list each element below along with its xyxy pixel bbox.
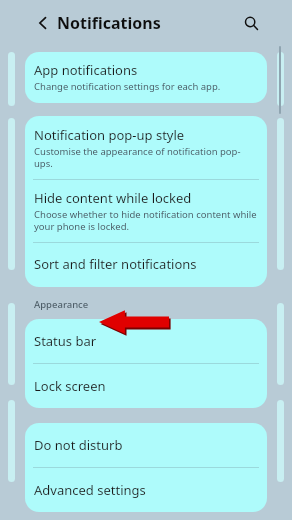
- button[interactable]: Lock screen: [25, 364, 267, 408]
- staticText: Lock screen: [34, 377, 106, 395]
- button[interactable]: Notification pop-up style: [25, 116, 267, 179]
- staticText: Change notification settings for each ap…: [34, 80, 221, 93]
- button[interactable]: Status bar: [25, 319, 267, 363]
- button[interactable]: Advanced settings: [25, 468, 267, 512]
- button[interactable]: Hide content while locked: [25, 180, 267, 242]
- staticText: Status bar: [34, 332, 97, 350]
- staticText: App notifications: [34, 61, 138, 79]
- staticText: Choose whether to hide notification cont…: [34, 208, 257, 233]
- button[interactable]: Back: [30, 10, 56, 36]
- staticText: Customise the appearance of notification…: [34, 145, 257, 170]
- button[interactable]: Search: [237, 9, 265, 37]
- staticText: Notifications: [57, 12, 161, 34]
- staticText: Hide content while locked: [34, 189, 192, 207]
- button[interactable]: Do not disturb: [25, 423, 267, 467]
- button[interactable]: App notifications: [25, 52, 267, 103]
- staticText: Sort and filter notifications: [34, 255, 197, 273]
- staticText: Do not disturb: [34, 436, 123, 454]
- staticText: Notification pop-up style: [34, 126, 185, 144]
- staticText: Advanced settings: [34, 481, 146, 499]
- staticText: Appearance: [34, 298, 89, 311]
- button[interactable]: Sort and filter notifications: [25, 243, 267, 287]
